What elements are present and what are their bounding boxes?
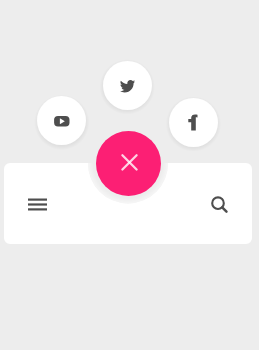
button[interactable]: Share on YouTube — [37, 96, 86, 145]
button[interactable]: Share on Twitter — [103, 61, 152, 110]
button[interactable]: Search — [205, 190, 232, 217]
button[interactable]: Close share menu — [96, 131, 161, 196]
button[interactable]: Menu — [24, 191, 51, 218]
button[interactable]: Share on Facebook — [169, 98, 218, 147]
